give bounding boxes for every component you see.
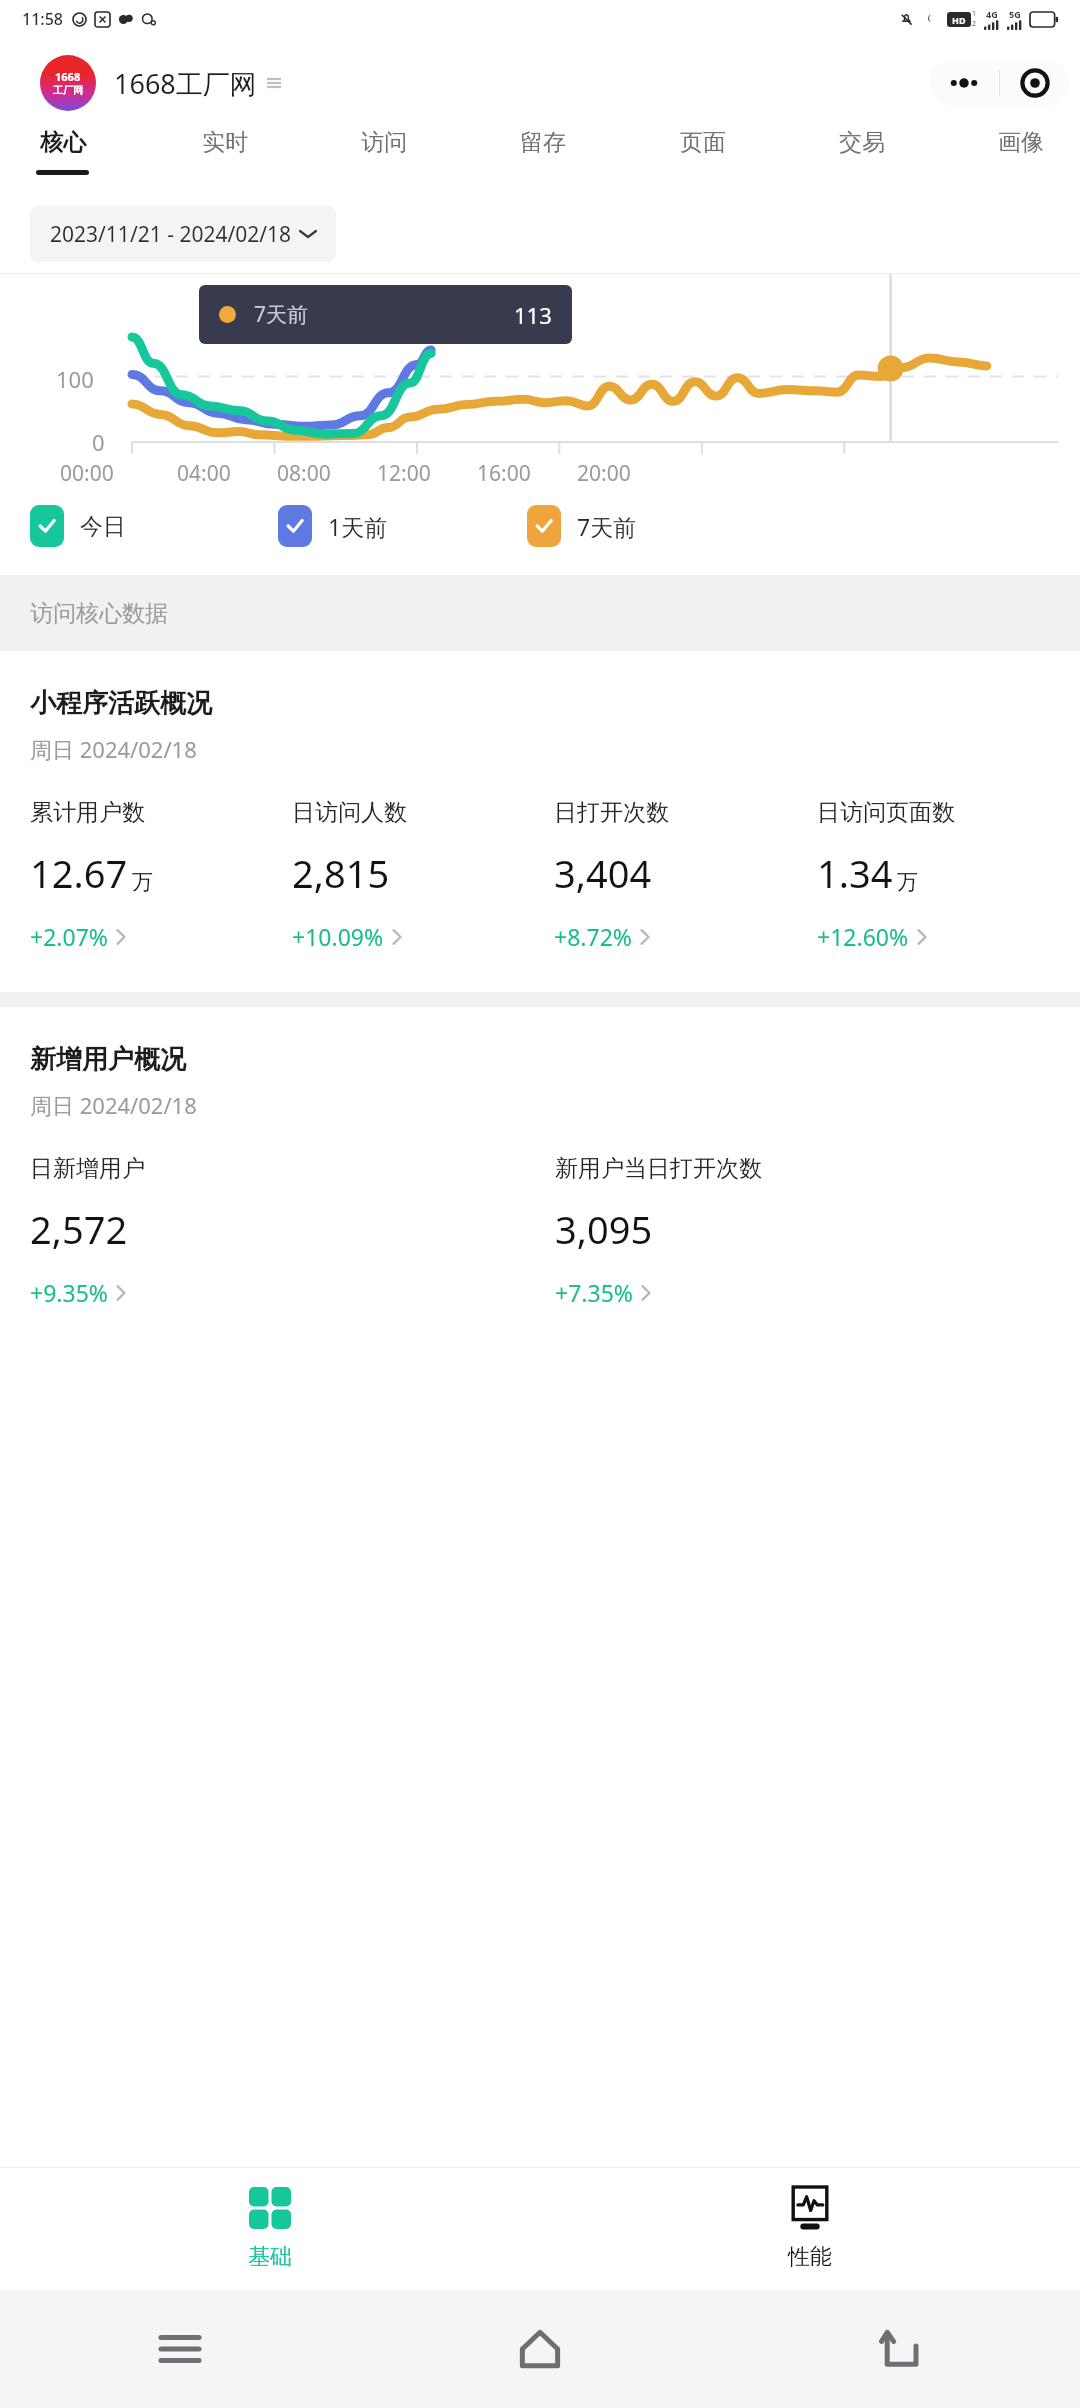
button[interactable]: 日打开次数 bbox=[554, 798, 817, 952]
button[interactable]: 实时 bbox=[196, 128, 254, 170]
button[interactable]: 新用户当日打开次数 bbox=[555, 1154, 1080, 1308]
staticText: 100 bbox=[56, 364, 94, 394]
staticText: 工厂网 bbox=[53, 84, 83, 97]
staticText: 周日 2024/02/18 bbox=[30, 734, 197, 764]
staticText: 小程序活跃概况 bbox=[30, 687, 212, 720]
staticText: 2,815 bbox=[292, 847, 390, 899]
staticText: 万 bbox=[132, 869, 153, 895]
staticText: +10.09% bbox=[292, 921, 384, 952]
button[interactable]: 2023/11/21 - 2024/02/18 bbox=[30, 206, 336, 262]
staticText: 5G bbox=[1009, 8, 1021, 20]
staticText: 2 bbox=[972, 19, 977, 29]
staticText: 113 bbox=[514, 300, 552, 330]
staticText: 7天前 bbox=[577, 511, 637, 542]
button[interactable]: 核心 bbox=[30, 128, 95, 175]
staticText: 页面 bbox=[680, 128, 726, 157]
staticText: 1668 bbox=[55, 69, 81, 84]
button[interactable]: 日新增用户 bbox=[30, 1154, 555, 1308]
staticText: 1天前 bbox=[328, 511, 388, 542]
staticText: 20:00 bbox=[577, 459, 631, 488]
staticText: 万 bbox=[897, 869, 918, 895]
staticText: 1.34 bbox=[817, 847, 893, 899]
button[interactable]: 访问 bbox=[355, 128, 413, 170]
button[interactable]: 日访问页面数 bbox=[817, 798, 1080, 952]
staticText: 性能 bbox=[788, 2243, 832, 2271]
staticText: 1 bbox=[972, 9, 977, 19]
staticText: 08:00 bbox=[277, 459, 331, 488]
staticText: 3,404 bbox=[554, 847, 652, 899]
staticText: 日打开次数 bbox=[554, 798, 669, 827]
staticText: 实时 bbox=[202, 128, 248, 157]
button[interactable]: Home bbox=[360, 2290, 720, 2408]
staticText: 12:00 bbox=[377, 459, 431, 488]
button[interactable]: Recent apps bbox=[0, 2290, 360, 2408]
button[interactable]: 7天前 bbox=[527, 505, 637, 547]
staticText: 基础 bbox=[248, 2243, 292, 2271]
staticText: 1668工厂网 bbox=[114, 65, 257, 102]
button[interactable]: 留存 bbox=[514, 128, 572, 170]
button[interactable]: 页面 bbox=[674, 128, 732, 170]
staticText: 日访问页面数 bbox=[817, 798, 955, 827]
staticText: 日访问人数 bbox=[292, 798, 407, 827]
button[interactable]: 1668 bbox=[40, 55, 281, 111]
staticText: +2.07% bbox=[30, 921, 108, 952]
button[interactable]: More options bbox=[929, 59, 999, 107]
staticText: 留存 bbox=[520, 128, 566, 157]
staticText: 00:00 bbox=[60, 459, 114, 488]
staticText: +12.60% bbox=[817, 921, 909, 952]
staticText: 12.67 bbox=[30, 847, 128, 899]
staticText: 画像 bbox=[998, 128, 1044, 157]
button[interactable]: 累计用户数 bbox=[30, 798, 292, 952]
staticText: 11:58 bbox=[22, 8, 63, 30]
button[interactable]: 基础 bbox=[0, 2168, 540, 2290]
staticText: 2,572 bbox=[30, 1203, 128, 1255]
staticText: 日新增用户 bbox=[30, 1154, 145, 1183]
staticText: 核心 bbox=[40, 128, 86, 157]
button[interactable]: 画像 bbox=[992, 128, 1050, 170]
staticText: 16:00 bbox=[477, 459, 531, 488]
staticText: 7天前 bbox=[254, 300, 309, 329]
button[interactable]: Close bbox=[1000, 59, 1070, 107]
button[interactable]: 今日 bbox=[30, 505, 126, 547]
staticText: 3,095 bbox=[555, 1203, 653, 1255]
staticText: 交易 bbox=[839, 128, 885, 157]
staticText: 0 bbox=[92, 427, 105, 457]
staticText: 今日 bbox=[80, 512, 126, 541]
staticText: 新增用户概况 bbox=[30, 1043, 186, 1076]
staticText: 2023/11/21 - 2024/02/18 bbox=[50, 220, 292, 249]
button[interactable]: 交易 bbox=[833, 128, 891, 170]
staticText: 访问核心数据 bbox=[30, 599, 168, 628]
staticText: +8.72% bbox=[554, 921, 632, 952]
button[interactable]: 性能 bbox=[540, 2168, 1080, 2290]
button[interactable]: Back bbox=[720, 2290, 1080, 2408]
staticText: +9.35% bbox=[30, 1277, 108, 1308]
staticText: 访问 bbox=[361, 128, 407, 157]
staticText: 04:00 bbox=[177, 459, 231, 488]
staticText: HD bbox=[952, 14, 966, 26]
button[interactable]: 日访问人数 bbox=[292, 798, 554, 952]
staticText: 新用户当日打开次数 bbox=[555, 1154, 762, 1183]
staticText: 4G bbox=[986, 8, 998, 20]
staticText: 周日 2024/02/18 bbox=[30, 1090, 197, 1120]
staticText: +7.35% bbox=[555, 1277, 633, 1308]
staticText: 累计用户数 bbox=[30, 798, 145, 827]
button[interactable]: 1天前 bbox=[278, 505, 388, 547]
